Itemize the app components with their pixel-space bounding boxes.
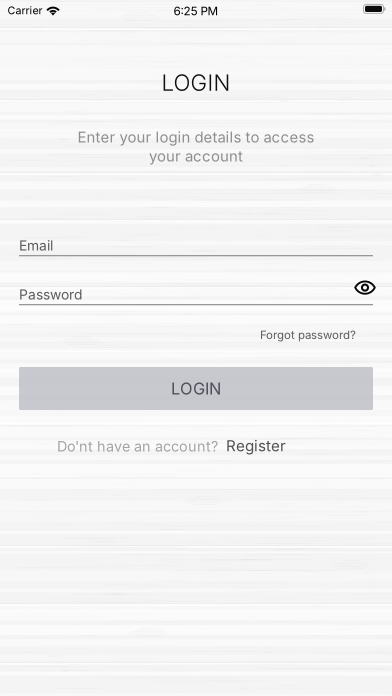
staticText: LOGIN bbox=[161, 69, 230, 96]
staticText: Do'nt have an account? bbox=[57, 437, 218, 455]
button[interactable]: Show password bbox=[348, 272, 382, 302]
staticText: Enter your login details to access bbox=[77, 128, 314, 146]
staticText: LOGIN bbox=[171, 379, 221, 398]
staticText: Carrier bbox=[8, 4, 43, 17]
staticText: 6:25 PM bbox=[173, 4, 218, 18]
button[interactable]: Register bbox=[226, 436, 286, 455]
staticText: Password bbox=[19, 286, 82, 303]
button[interactable]: LOGIN bbox=[19, 367, 373, 410]
staticText: Forgot password? bbox=[260, 328, 356, 342]
staticText: your account bbox=[149, 147, 243, 165]
staticText: Register bbox=[226, 436, 286, 455]
staticText: Email bbox=[19, 237, 53, 254]
button[interactable]: Forgot password? bbox=[260, 328, 356, 342]
